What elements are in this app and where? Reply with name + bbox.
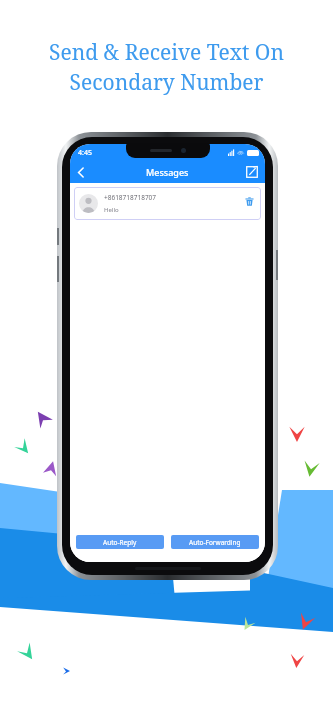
staticText: +8618718718707 bbox=[104, 193, 157, 202]
button[interactable]: Auto-Reply bbox=[76, 535, 164, 549]
staticText: Send & Receive Text On Secondary Number bbox=[49, 38, 284, 96]
staticText: Hello bbox=[104, 206, 119, 214]
button[interactable]: Auto-Forwarding bbox=[171, 535, 259, 549]
staticText: Auto-Forwarding bbox=[189, 538, 241, 547]
button[interactable]: Delete conversation bbox=[242, 197, 256, 211]
staticText: Messages bbox=[146, 166, 189, 178]
staticText: 4:45 bbox=[78, 148, 92, 158]
button[interactable]: Compose message bbox=[244, 164, 260, 180]
button[interactable]: Back bbox=[70, 161, 92, 183]
button[interactable]: +8618718718707 bbox=[74, 187, 261, 220]
staticText: Auto-Reply bbox=[103, 538, 137, 547]
